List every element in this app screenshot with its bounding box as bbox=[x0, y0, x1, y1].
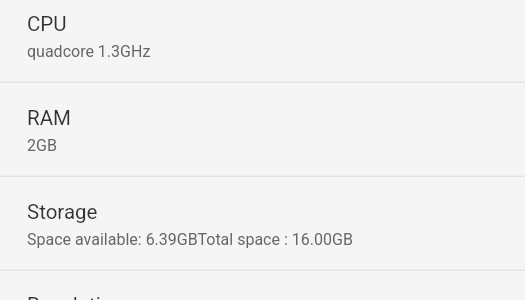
staticText: RAM bbox=[27, 106, 71, 130]
button[interactable]: Storage bbox=[0, 177, 525, 270]
button[interactable]: CPU bbox=[0, 0, 525, 82]
button[interactable]: Resolution bbox=[0, 271, 525, 300]
staticText: Space available: 6.39GBTotal space : 16.… bbox=[27, 230, 353, 249]
staticText: quadcore 1.3GHz bbox=[27, 42, 151, 61]
staticText: Storage bbox=[27, 200, 98, 224]
staticText: CPU bbox=[27, 12, 67, 36]
staticText: Resolution bbox=[27, 293, 124, 300]
staticText: 2GB bbox=[27, 136, 57, 155]
button[interactable]: RAM bbox=[0, 83, 525, 176]
